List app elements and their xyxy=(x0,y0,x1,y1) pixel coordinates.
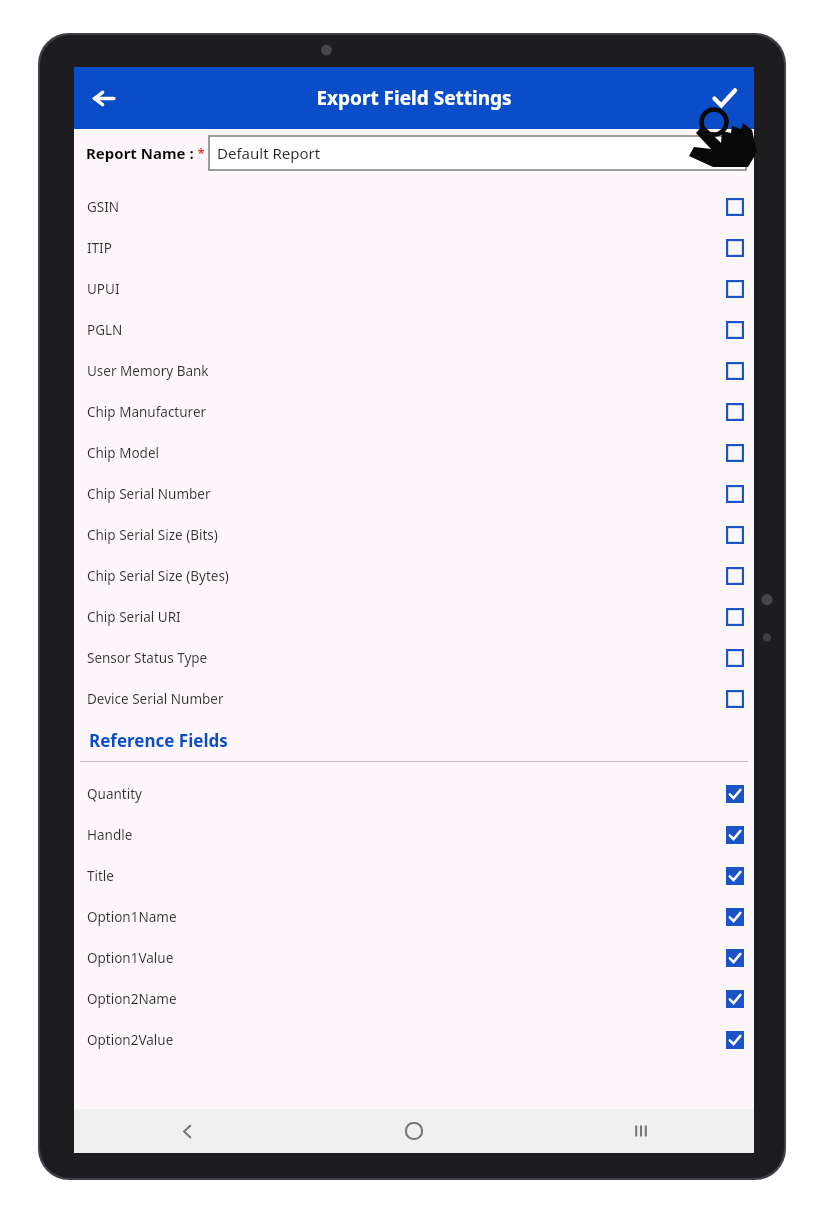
button[interactable]: Back xyxy=(74,1109,300,1153)
staticText: Chip Manufacturer xyxy=(87,403,207,421)
button[interactable]: Chip Manufacturer xyxy=(74,391,754,432)
staticText: User Memory Bank xyxy=(87,362,209,380)
button[interactable]: ITIP xyxy=(74,227,754,268)
button[interactable]: UPUI xyxy=(74,268,754,309)
button[interactable]: Quantity xyxy=(74,773,754,814)
staticText: PGLN xyxy=(87,321,123,339)
button[interactable]: Option1Value xyxy=(74,937,754,978)
button[interactable]: Title xyxy=(74,855,754,896)
staticText: Chip Model xyxy=(87,444,159,462)
button[interactable]: PGLN xyxy=(74,309,754,350)
button[interactable]: Chip Model xyxy=(74,432,754,473)
button[interactable]: Chip Serial Size (Bytes) xyxy=(74,555,754,596)
staticText: Device Serial Number xyxy=(87,690,224,708)
staticText: Report Name : xyxy=(86,143,194,163)
staticText: Option2Name xyxy=(87,990,177,1008)
staticText: * xyxy=(194,144,205,162)
button[interactable]: Device Serial Number xyxy=(74,678,754,719)
staticText: Chip Serial Number xyxy=(87,485,211,503)
button[interactable]: Chip Serial Number xyxy=(74,473,754,514)
button[interactable]: Sensor Status Type xyxy=(74,637,754,678)
staticText: UPUI xyxy=(87,280,120,298)
button[interactable]: User Memory Bank xyxy=(74,350,754,391)
staticText: Option1Value xyxy=(87,949,174,967)
staticText: Sensor Status Type xyxy=(87,649,208,667)
staticText: Reference Fields xyxy=(89,729,228,752)
button[interactable]: Save xyxy=(701,75,747,121)
button[interactable]: Handle xyxy=(74,814,754,855)
staticText: Handle xyxy=(87,826,133,844)
button[interactable]: Option1Name xyxy=(74,896,754,937)
button[interactable]: Home xyxy=(300,1109,527,1153)
staticText: Option1Name xyxy=(87,908,177,926)
button[interactable]: Option2Value xyxy=(74,1019,754,1060)
staticText: Chip Serial Size (Bits) xyxy=(87,526,218,544)
staticText: GSIN xyxy=(87,198,120,216)
staticText: Title xyxy=(87,867,114,885)
button[interactable]: Back xyxy=(79,74,127,122)
button[interactable]: Chip Serial URI xyxy=(74,596,754,637)
button[interactable]: Default Report xyxy=(209,136,746,170)
staticText: ITIP xyxy=(87,239,112,257)
button[interactable]: GSIN xyxy=(74,186,754,227)
button[interactable]: Option2Name xyxy=(74,978,754,1019)
staticText: Chip Serial URI xyxy=(87,608,181,626)
staticText: Chip Serial Size (Bytes) xyxy=(87,567,229,585)
staticText: Default Report xyxy=(217,143,321,163)
button[interactable]: Recent apps xyxy=(527,1109,754,1153)
button[interactable]: Chip Serial Size (Bits) xyxy=(74,514,754,555)
staticText: Quantity xyxy=(87,785,142,803)
staticText: Option2Value xyxy=(87,1031,174,1049)
staticText: Export Field Settings xyxy=(316,85,512,111)
